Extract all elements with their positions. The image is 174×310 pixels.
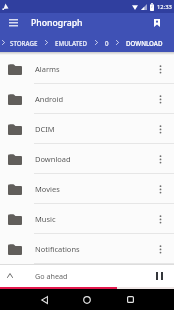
staticText: Music: [35, 214, 56, 224]
button[interactable]: [150, 119, 170, 139]
button[interactable]: STORAGE: [10, 39, 38, 47]
staticText: 12:33: [157, 3, 172, 11]
staticText: Movies: [35, 184, 60, 194]
staticText: DCIM: [35, 124, 55, 134]
button[interactable]: [149, 266, 169, 286]
staticText: Phonograph: [31, 17, 83, 29]
staticText: Notifications: [35, 244, 80, 254]
button[interactable]: [150, 209, 170, 229]
button[interactable]: DOWNLOAD: [126, 39, 163, 47]
staticText: Download: [35, 154, 71, 164]
button[interactable]: Movies: [0, 174, 174, 204]
button[interactable]: [150, 239, 170, 259]
button[interactable]: Alarms: [0, 54, 174, 84]
button[interactable]: [150, 59, 170, 79]
button[interactable]: [150, 179, 170, 199]
button[interactable]: [3, 13, 23, 33]
button[interactable]: Download: [0, 144, 174, 174]
button[interactable]: [29, 289, 59, 310]
button[interactable]: [115, 289, 145, 310]
staticText: Go ahead: [35, 271, 68, 281]
button[interactable]: [147, 13, 167, 33]
button[interactable]: Android: [0, 84, 174, 114]
button[interactable]: [150, 149, 170, 169]
button[interactable]: DCIM: [0, 114, 174, 144]
staticText: Android: [35, 94, 64, 104]
button[interactable]: Music: [0, 204, 174, 234]
button[interactable]: [150, 89, 170, 109]
button[interactable]: EMULATED: [55, 39, 88, 47]
button[interactable]: Go ahead: [0, 264, 174, 287]
button[interactable]: 0: [105, 39, 109, 47]
staticText: Alarms: [35, 64, 60, 74]
button[interactable]: [72, 289, 102, 310]
button[interactable]: Notifications: [0, 234, 174, 264]
